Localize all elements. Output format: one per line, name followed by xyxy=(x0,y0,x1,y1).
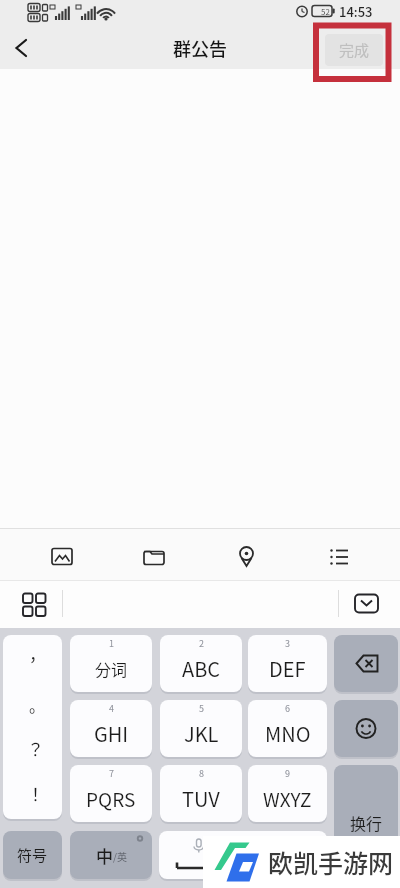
button[interactable]: 完成 xyxy=(325,34,383,66)
staticText: 。 xyxy=(29,693,46,716)
staticText: WXYZ xyxy=(263,785,312,813)
staticText: 2 xyxy=(199,637,204,649)
staticText: MNO xyxy=(265,719,311,748)
staticText: 3 xyxy=(285,637,290,649)
button[interactable]: 中 xyxy=(70,831,152,879)
button[interactable] xyxy=(70,765,152,822)
staticText: 欧凯手游网 xyxy=(268,844,394,880)
staticText: PQRS xyxy=(86,785,136,813)
button[interactable] xyxy=(206,534,286,574)
button[interactable] xyxy=(70,635,152,692)
staticText: ！ xyxy=(27,781,44,806)
button[interactable] xyxy=(334,635,398,692)
staticText: 5 xyxy=(199,702,204,714)
button[interactable] xyxy=(3,635,62,819)
staticText: ABC xyxy=(182,654,221,683)
button[interactable] xyxy=(248,765,327,822)
button[interactable] xyxy=(299,534,379,574)
staticText: 7 xyxy=(109,767,114,779)
staticText: JKL xyxy=(184,719,219,748)
staticText: GHI xyxy=(94,719,129,748)
staticText: 4 xyxy=(109,702,114,714)
button[interactable]: 换行 xyxy=(334,765,398,879)
button[interactable] xyxy=(159,831,327,879)
button[interactable]: 符号 xyxy=(3,831,62,879)
staticText: ， xyxy=(29,641,46,666)
button[interactable] xyxy=(22,534,102,574)
button[interactable] xyxy=(348,586,386,622)
staticText: TUV xyxy=(182,784,220,813)
staticText: 符号 xyxy=(17,844,48,866)
staticText: DEF xyxy=(269,654,306,683)
button[interactable] xyxy=(248,700,327,757)
button[interactable] xyxy=(248,635,327,692)
staticText: 52 xyxy=(321,6,330,18)
button[interactable] xyxy=(0,28,60,69)
staticText: 中 xyxy=(96,843,113,868)
staticText: 完成 xyxy=(339,39,370,61)
button[interactable] xyxy=(160,635,242,692)
staticText: /英 xyxy=(113,849,127,863)
staticText: 8 xyxy=(199,767,204,779)
button[interactable] xyxy=(14,586,56,622)
staticText: 9 xyxy=(285,767,290,779)
staticText: 6 xyxy=(285,702,290,714)
staticText: ？ xyxy=(27,736,44,761)
button[interactable] xyxy=(114,534,194,574)
button[interactable] xyxy=(160,765,242,822)
staticText: 群公告 xyxy=(173,35,227,61)
staticText: 换行 xyxy=(350,811,383,834)
button[interactable] xyxy=(334,700,398,757)
staticText: 14:53 xyxy=(339,2,373,21)
button[interactable] xyxy=(70,700,152,757)
staticText: 分词 xyxy=(95,657,128,680)
staticText: 1 xyxy=(109,637,114,649)
button[interactable] xyxy=(160,700,242,757)
